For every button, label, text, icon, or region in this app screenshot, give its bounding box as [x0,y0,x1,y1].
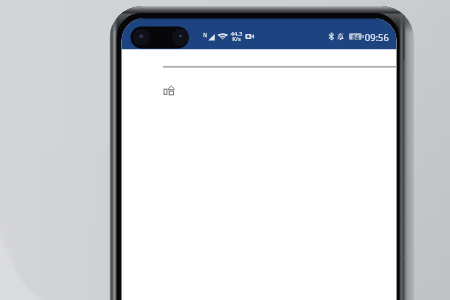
button[interactable]: Note text [121,67,397,300]
